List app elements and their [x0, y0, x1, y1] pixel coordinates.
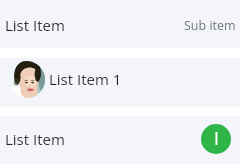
- staticText: List Item: [5, 129, 65, 149]
- button[interactable]: List Item: [0, 116, 240, 164]
- staticText: I: [214, 126, 219, 150]
- staticText: List Item 1: [49, 69, 122, 89]
- button[interactable]: List Item 1: [0, 58, 240, 107]
- button[interactable]: List Item: [0, 0, 240, 48]
- staticText: List Item: [5, 15, 65, 35]
- staticText: Sub item: [184, 17, 236, 34]
- button[interactable]: Open item: [201, 124, 231, 154]
